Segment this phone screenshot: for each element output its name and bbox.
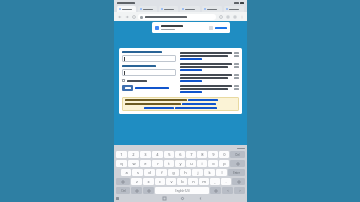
staticText: h [184,170,187,175]
button[interactable]: < [222,187,233,194]
button[interactable] [202,6,222,12]
button[interactable] [144,107,174,109]
button[interactable]: b [177,178,187,185]
button[interactable]: x [143,178,154,185]
button[interactable]: i [197,160,207,167]
button[interactable]: k [204,169,215,176]
button[interactable]: n [188,178,198,185]
button[interactable] [138,14,216,20]
button[interactable] [224,6,244,12]
button[interactable]: Enter [228,169,245,176]
button[interactable]: English (US) [155,187,209,194]
button[interactable]: j [192,169,203,176]
button[interactable]: , [210,178,220,185]
button[interactable]: f [156,169,167,176]
button[interactable]: Forward [123,13,130,20]
button[interactable] [180,6,200,12]
staticText: u [190,161,193,166]
staticText: i [201,161,203,166]
staticText: . [225,179,227,184]
staticText: b [181,179,184,184]
button[interactable]: Recents [162,196,166,200]
button[interactable] [135,87,169,89]
button[interactable] [180,62,239,72]
button[interactable]: u [186,160,196,167]
staticText: 2 [132,152,135,157]
staticText: l [221,170,223,175]
staticText: r [157,161,159,166]
button[interactable] [122,79,125,82]
button[interactable]: > [234,187,245,194]
button[interactable]: 4 [152,151,163,158]
staticText: 6 [179,152,182,157]
button[interactable] [180,73,239,83]
button[interactable] [122,69,176,76]
button[interactable] [159,6,178,12]
button[interactable]: s [132,169,143,176]
button[interactable]: 3 [140,151,151,158]
button[interactable]: 6 [175,151,185,158]
button[interactable]: w [128,160,139,167]
button[interactable]: . [221,178,231,185]
button[interactable]: Symbols [232,178,245,185]
staticText: m [202,179,206,184]
button[interactable] [180,51,239,61]
button[interactable]: Hide keyboard [116,197,119,200]
button[interactable]: y [175,160,185,167]
button[interactable]: 7 [186,151,196,158]
button[interactable] [117,6,136,12]
button[interactable]: Shift [116,178,130,185]
button[interactable]: Emoji [131,187,142,194]
staticText: 4 [156,152,159,157]
button[interactable]: a [121,169,131,176]
staticText: k [208,170,211,175]
button[interactable]: Settings [143,187,154,194]
button[interactable]: c [155,178,165,185]
button[interactable]: 0 [219,151,229,158]
button[interactable]: Home [180,196,184,200]
button[interactable] [182,103,216,105]
button[interactable]: l [216,169,227,176]
button[interactable]: Profile [231,13,238,20]
button[interactable] [152,22,230,33]
button[interactable]: m [199,178,209,185]
staticText: v [170,179,173,184]
staticText: 9 [212,152,215,157]
button[interactable]: More options [238,13,245,20]
button[interactable] [180,84,239,94]
button[interactable]: 2 [128,151,139,158]
button[interactable]: 8 [197,151,207,158]
button[interactable]: o [208,160,218,167]
button[interactable]: Ctrl [116,187,130,194]
staticText: 1 [120,152,123,157]
button[interactable]: Backspace [230,160,245,167]
button[interactable]: h [180,169,191,176]
staticText: j [197,170,199,175]
button[interactable]: Extensions [224,13,231,20]
button[interactable]: z [131,178,142,185]
button[interactable]: t [164,160,174,167]
button[interactable] [122,85,133,91]
button[interactable]: g [168,169,179,176]
button[interactable]: Bookmark [217,13,224,20]
button[interactable] [122,55,176,62]
staticText: 8 [201,152,204,157]
button[interactable] [175,107,217,109]
button[interactable]: Back [116,13,123,20]
button[interactable]: 1 [116,151,127,158]
button[interactable]: 5 [164,151,174,158]
staticText: t [168,161,170,166]
button[interactable]: Reload [130,13,137,20]
button[interactable]: q [116,160,127,167]
button[interactable]: d [144,169,155,176]
button[interactable]: e [140,160,151,167]
button[interactable]: Language [210,187,221,194]
button[interactable]: v [166,178,176,185]
button[interactable]: 9 [208,151,218,158]
button[interactable]: p [219,160,229,167]
staticText: w [132,161,136,166]
button[interactable]: r [152,160,163,167]
button[interactable] [138,6,157,12]
button[interactable]: Del [230,151,245,158]
button[interactable]: Back [198,196,202,200]
